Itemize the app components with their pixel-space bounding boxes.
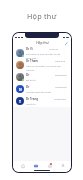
staticText: 20/05/2021	[55, 74, 68, 77]
button[interactable]: Dr Vi	[13, 47, 71, 59]
staticText: Hôm qua	[55, 60, 65, 63]
staticText: Hộp thư	[36, 41, 49, 45]
staticText: Dr Nguyên	[26, 85, 40, 89]
staticText: ngày nay...	[26, 56, 68, 59]
staticText: Đã đi rồi	[26, 78, 68, 81]
button[interactable]: N	[13, 83, 71, 95]
button[interactable]: Tài khoản	[56, 161, 68, 172]
button[interactable]: Dr Thuong	[13, 71, 71, 83]
staticText: Chuyển xem cần chiết	[26, 90, 68, 93]
staticText: Hộp thư	[27, 11, 57, 21]
button[interactable]: Soạn thư	[64, 41, 69, 46]
staticText: 16/05/2021	[54, 98, 67, 101]
staticText: Dr Tham	[26, 59, 39, 63]
button[interactable]: Thông báo	[43, 161, 55, 172]
staticText: 18/05/2021	[55, 86, 68, 89]
button[interactable]: T	[13, 95, 71, 107]
staticText: T	[19, 99, 21, 104]
staticText: Dr Trang	[26, 97, 39, 101]
staticText: Dr Vi	[26, 47, 33, 51]
staticText: 10:34 SA	[49, 48, 59, 51]
button[interactable]: Dr Tham	[13, 59, 71, 71]
staticText: Chỉ nhắn lại một lời cảm ơn đã	[26, 52, 68, 55]
staticText: N	[19, 87, 22, 92]
button[interactable]: Hộp thư	[29, 161, 41, 172]
staticText: Nơi ở rồi	[26, 102, 68, 105]
button[interactable]: Trang chủ	[16, 161, 28, 172]
staticText: Nếu có nơi nhiều, tích hình cho	[26, 64, 68, 67]
staticText: Dr Thuong	[26, 73, 40, 77]
staticText: hai thu...	[26, 68, 68, 71]
